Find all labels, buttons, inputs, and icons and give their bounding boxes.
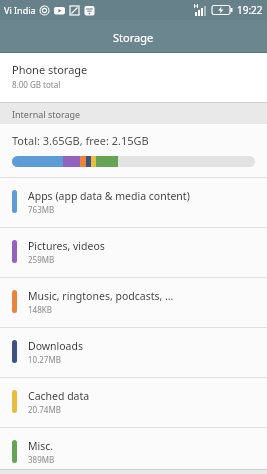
button[interactable]: Misc. — [0, 428, 267, 474]
button[interactable]: Pictures, videos — [0, 228, 267, 277]
staticText: Phone storage — [12, 62, 88, 77]
staticText: Storage — [113, 30, 154, 45]
staticText: Cached data — [28, 389, 90, 403]
staticText: 148KB — [28, 304, 52, 315]
staticText: 259MB — [28, 254, 55, 265]
staticText: Music, ringtones, podcasts, … — [28, 289, 174, 303]
staticText: Apps (app data & media content) — [28, 189, 190, 203]
staticText: Vi India — [4, 4, 36, 16]
staticText: 10.27MB — [28, 354, 61, 365]
button[interactable]: Cached data — [0, 378, 267, 427]
staticText: Internal storage — [12, 108, 81, 120]
staticText: Pictures, videos — [28, 239, 105, 253]
button[interactable]: Downloads — [0, 328, 267, 377]
button[interactable]: Music, ringtones, podcasts, … — [0, 278, 267, 327]
button[interactable]: Phone storage — [0, 53, 267, 102]
button[interactable]: Apps (app data & media content) — [0, 178, 267, 227]
staticText: Downloads — [28, 339, 83, 353]
staticText: 763MB — [28, 204, 55, 215]
staticText: 19:22 — [237, 3, 263, 17]
staticText: Misc. — [28, 439, 54, 453]
staticText: 8.00 GB total — [12, 79, 61, 90]
staticText: 20.74MB — [28, 404, 61, 415]
staticText: Total: 3.65GB, free: 2.15GB — [12, 133, 149, 148]
staticText: 389MB — [28, 454, 55, 465]
